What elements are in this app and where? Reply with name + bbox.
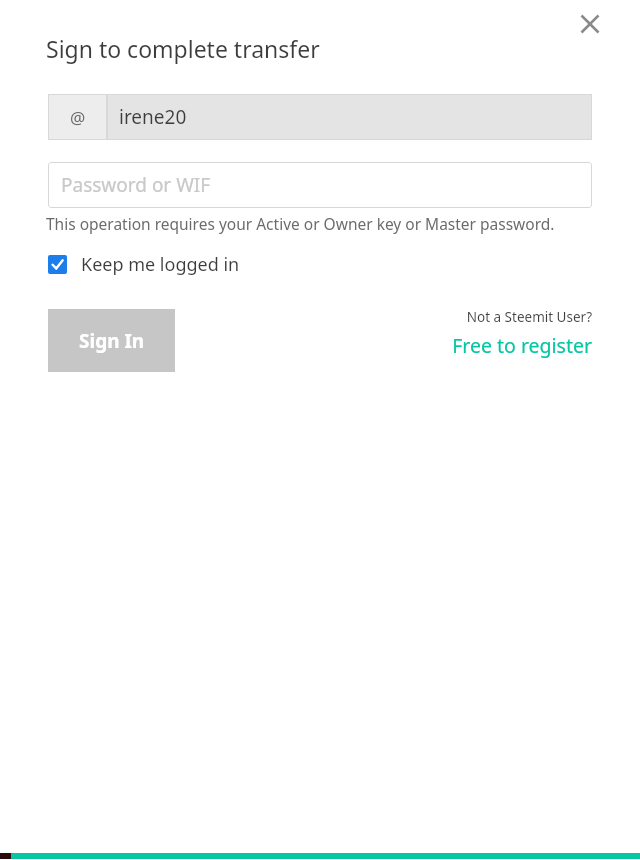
button[interactable]: Sign In [48, 309, 175, 372]
staticText: Sign to complete transfer [46, 33, 320, 64]
button[interactable]: @ [48, 94, 592, 140]
staticText: Keep me logged in [81, 252, 240, 277]
staticText: Sign In [79, 328, 145, 354]
staticText: Password or WIF [61, 172, 211, 198]
button[interactable]: Close [568, 2, 612, 46]
staticText: This operation requires your Active or O… [46, 213, 555, 234]
staticText: irene20 [119, 104, 187, 130]
button[interactable]: Password or WIF [48, 162, 592, 208]
staticText: Free to register [452, 332, 592, 359]
button[interactable]: Free to register [452, 332, 592, 359]
staticText: @ [70, 106, 86, 129]
staticText: Not a Steemit User? [466, 308, 592, 326]
button[interactable]: Keep me logged in [48, 250, 240, 278]
